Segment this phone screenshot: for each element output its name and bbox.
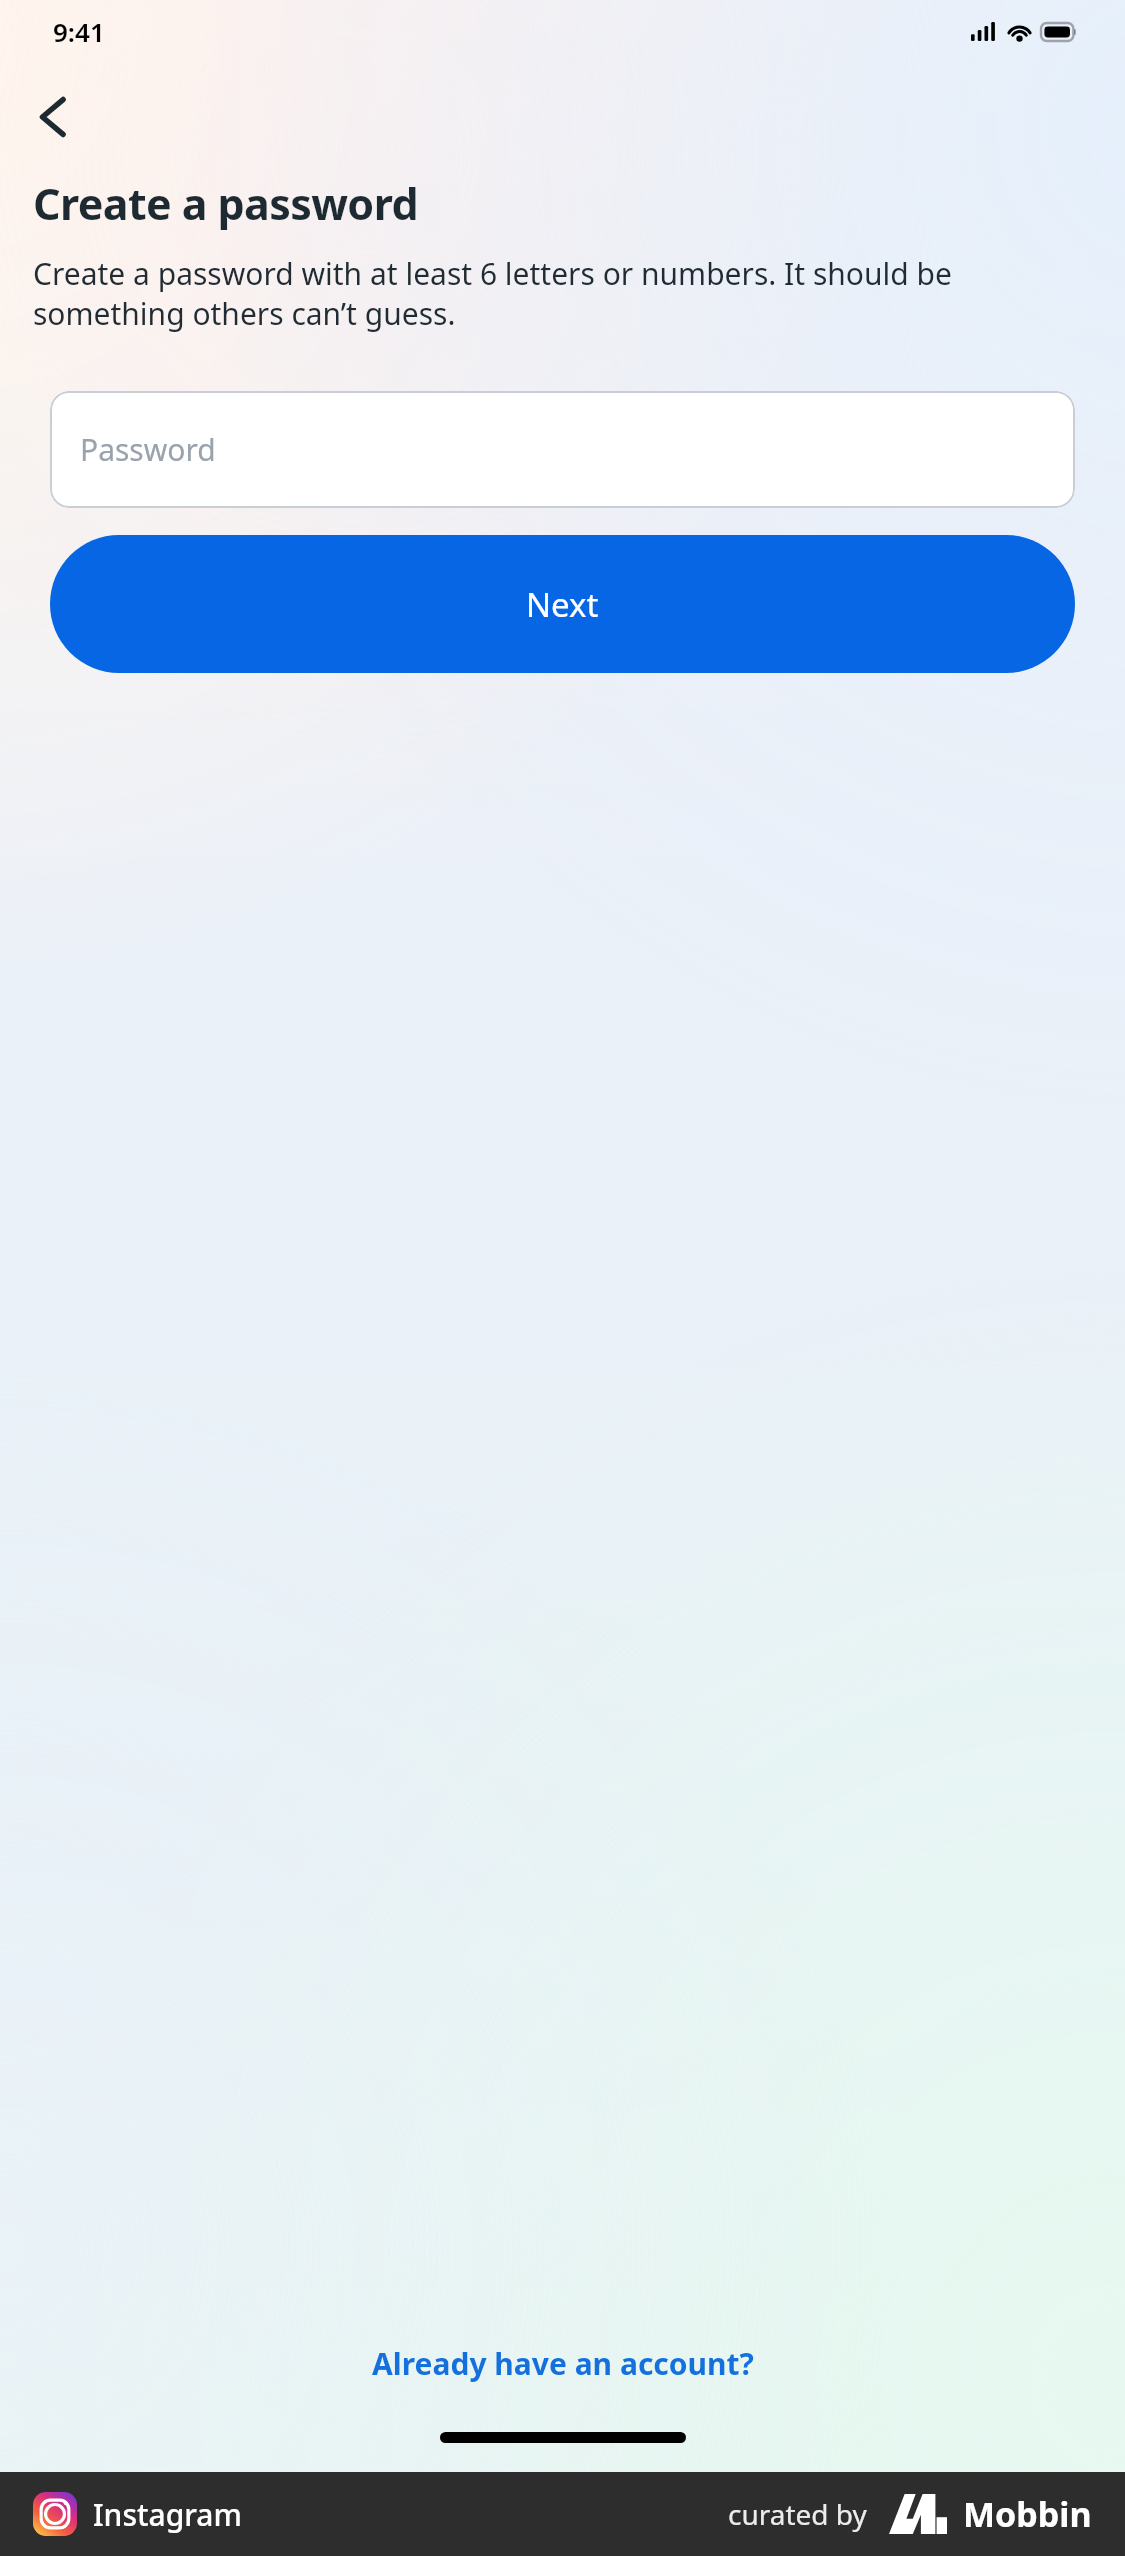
staticText: Mobbin bbox=[963, 2491, 1092, 2537]
button[interactable]: Already have an account? bbox=[354, 2331, 772, 2396]
staticText: Instagram bbox=[93, 2494, 242, 2535]
staticText: Password bbox=[80, 429, 216, 470]
button[interactable]: Next bbox=[50, 535, 1075, 673]
staticText: Create a password with at least 6 letter… bbox=[33, 253, 1083, 334]
staticText: Create a password bbox=[33, 174, 418, 233]
staticText: Already have an account? bbox=[372, 2343, 754, 2384]
staticText: 9:41 bbox=[53, 14, 105, 49]
button[interactable]: Back bbox=[22, 86, 84, 148]
button[interactable]: Password bbox=[50, 391, 1075, 508]
staticText: curated by bbox=[728, 2495, 867, 2533]
staticText: Next bbox=[526, 582, 599, 627]
